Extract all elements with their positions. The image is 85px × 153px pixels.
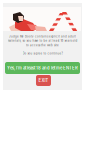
staticText: Do you agree to continue? <box>22 52 62 55</box>
staticText: EXIT <box>38 78 48 83</box>
button[interactable]: Yes, I'm at least 18 and let me ENTER <box>5 62 80 74</box>
staticText: Yes, I'm at least 18 and let me ENTER <box>7 65 78 70</box>
staticText: materials, so you have to be at least 18… <box>7 39 77 42</box>
staticText: Judge My Booty contains explicit and adu… <box>9 35 76 38</box>
button[interactable]: EXIT <box>36 75 51 86</box>
staticText: to access the web site <box>26 43 59 47</box>
